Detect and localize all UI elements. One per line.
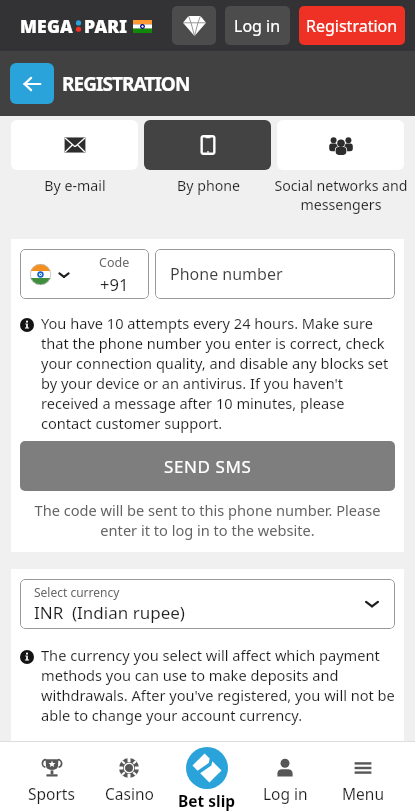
button[interactable]: Log in <box>225 6 290 45</box>
staticText: You have 10 attempts every 24 hours. Mak… <box>41 313 395 433</box>
staticText: SEND SMS <box>164 455 252 478</box>
button[interactable]: Phone number <box>155 249 395 299</box>
staticText: By e-mail <box>44 176 106 195</box>
staticText: PARI <box>84 14 128 38</box>
button[interactable]: Registration <box>299 6 405 45</box>
staticText: Code <box>99 254 130 271</box>
staticText: Social networks and <box>274 176 408 195</box>
staticText: Log in <box>263 783 308 804</box>
staticText: Phone number <box>170 263 283 285</box>
button[interactable]: Social networks and <box>277 120 404 214</box>
staticText: By phone <box>177 176 240 195</box>
staticText: Registration <box>306 15 398 37</box>
button[interactable]: By phone <box>144 120 271 195</box>
button[interactable]: Code <box>20 249 149 299</box>
staticText: The code will be sent to this phone numb… <box>26 500 389 540</box>
staticText: messengers <box>300 195 382 214</box>
staticText: Select currency <box>34 584 120 600</box>
staticText: Log in <box>234 15 281 37</box>
staticText: +91 <box>100 273 129 295</box>
button[interactable]: By e-mail <box>11 120 138 195</box>
button[interactable]: Select currency <box>20 579 395 629</box>
button[interactable]: Bet slip <box>168 741 246 811</box>
staticText: Casino <box>105 783 154 804</box>
staticText: Bet slip <box>178 790 236 811</box>
staticText: The currency you select will affect whic… <box>41 645 395 725</box>
staticText: Menu <box>342 783 384 804</box>
staticText: INR <box>34 601 64 624</box>
staticText: (Indian rupee) <box>72 601 185 624</box>
button[interactable]: Casino <box>90 741 168 811</box>
staticText: MEGA <box>20 14 73 38</box>
button[interactable]: Sports <box>13 741 90 811</box>
button[interactable]: Menu <box>324 741 402 811</box>
button[interactable]: Log in <box>246 741 324 811</box>
staticText: REGISTRATION <box>62 71 190 97</box>
button[interactable]: Back <box>10 63 54 104</box>
button[interactable]: SEND SMS <box>20 441 395 491</box>
button[interactable]: Bonuses <box>172 6 216 45</box>
staticText: Sports <box>28 783 75 804</box>
